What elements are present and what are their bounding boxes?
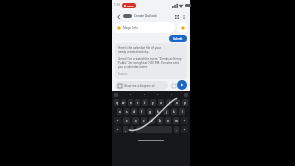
button[interactable]: Here's the calendar file of your newly c… — [115, 43, 187, 79]
staticText: Show me a diagram of — [124, 84, 155, 88]
button[interactable]: Space — [136, 126, 172, 133]
button[interactable]: x — [132, 117, 139, 124]
button[interactable]: More options — [180, 13, 187, 20]
button[interactable]: k — [171, 108, 177, 115]
staticText: k — [173, 110, 175, 114]
staticText: Submit — [173, 37, 183, 41]
staticText: q — [116, 101, 118, 105]
staticText: v — [151, 119, 153, 123]
button[interactable]: Back — [115, 13, 122, 20]
button[interactable]: u — [158, 99, 164, 106]
button[interactable]: Send — [177, 80, 187, 90]
button[interactable]: r — [135, 99, 140, 106]
button[interactable]: q — [114, 99, 119, 106]
staticText: Sources — [118, 72, 128, 76]
staticText: f — [141, 110, 143, 114]
staticText: c — [143, 119, 145, 123]
button[interactable]: v — [149, 117, 155, 124]
button[interactable]: g — [147, 108, 153, 115]
staticText: a — [119, 110, 121, 114]
staticText: z — [126, 119, 128, 123]
staticText: 00:42 — [127, 4, 134, 7]
button[interactable]: Magic Info — [114, 22, 175, 33]
button[interactable]: y — [150, 99, 156, 106]
button[interactable]: c — [141, 117, 147, 124]
staticText: . — [176, 128, 177, 132]
staticText: r — [137, 101, 139, 105]
staticText: p — [184, 101, 186, 105]
staticText: o — [176, 101, 178, 105]
staticText: b — [159, 119, 161, 123]
staticText: i — [169, 101, 170, 105]
staticText: t — [144, 101, 146, 105]
button[interactable]: f — [139, 108, 145, 115]
button[interactable]: z — [123, 117, 130, 124]
staticText: j — [166, 110, 167, 114]
staticText: h — [157, 110, 159, 114]
staticText: s — [126, 110, 128, 114]
staticText: e — [130, 101, 132, 105]
button[interactable]: , — [123, 126, 128, 133]
staticText: Great! I've created the event "Drinks at… — [118, 57, 182, 69]
button[interactable]: b — [157, 117, 163, 124]
staticText: u — [160, 101, 162, 105]
button[interactable]: n — [165, 117, 171, 124]
staticText: Magic Info — [123, 26, 138, 30]
staticText: d — [133, 110, 135, 114]
staticText: x — [135, 119, 137, 123]
staticText: · — [157, 93, 158, 97]
button[interactable]: l — [179, 108, 185, 115]
staticText: l — [182, 110, 183, 114]
button[interactable]: Show me a diagram of — [115, 81, 168, 90]
button[interactable]: w — [121, 99, 126, 106]
staticText: 1:16 — [114, 3, 120, 7]
button[interactable]: Symbols — [114, 126, 121, 133]
staticText: y — [152, 101, 154, 105]
button[interactable]: a — [117, 108, 122, 115]
button[interactable]: o — [174, 99, 180, 106]
button[interactable]: j — [163, 108, 169, 115]
button[interactable]: Grid view — [173, 13, 180, 20]
button[interactable]: p — [182, 99, 188, 106]
button[interactable]: Shift — [114, 117, 121, 124]
button[interactable]: Attach — [170, 82, 177, 89]
staticText: w — [122, 101, 125, 105]
button[interactable]: Submit — [169, 35, 187, 42]
staticText: · — [171, 93, 172, 97]
button[interactable]: Backspace — [181, 117, 188, 124]
staticText: · — [130, 93, 131, 97]
staticText: , — [125, 128, 126, 132]
button[interactable]: t — [142, 99, 148, 106]
button[interactable]: d — [131, 108, 137, 115]
staticText: · — [144, 93, 145, 97]
button[interactable]: Enter — [181, 126, 188, 133]
button[interactable]: h — [155, 108, 161, 115]
button[interactable]: e — [128, 99, 133, 106]
button[interactable]: Key — [130, 126, 134, 133]
staticText: Create Outlook — [134, 14, 158, 18]
staticText: m — [175, 119, 178, 123]
button[interactable]: m — [173, 117, 179, 124]
staticText: n — [167, 119, 169, 123]
button[interactable]: Toolbar — [114, 93, 118, 97]
button[interactable]: Add — [177, 22, 188, 33]
button[interactable]: s — [124, 108, 129, 115]
button[interactable]: i — [166, 99, 172, 106]
staticText: Here's the calendar file of your newly c… — [118, 46, 162, 54]
button[interactable]: Voice input — [184, 93, 188, 97]
staticText: g — [149, 110, 151, 114]
button[interactable]: . — [174, 126, 179, 133]
